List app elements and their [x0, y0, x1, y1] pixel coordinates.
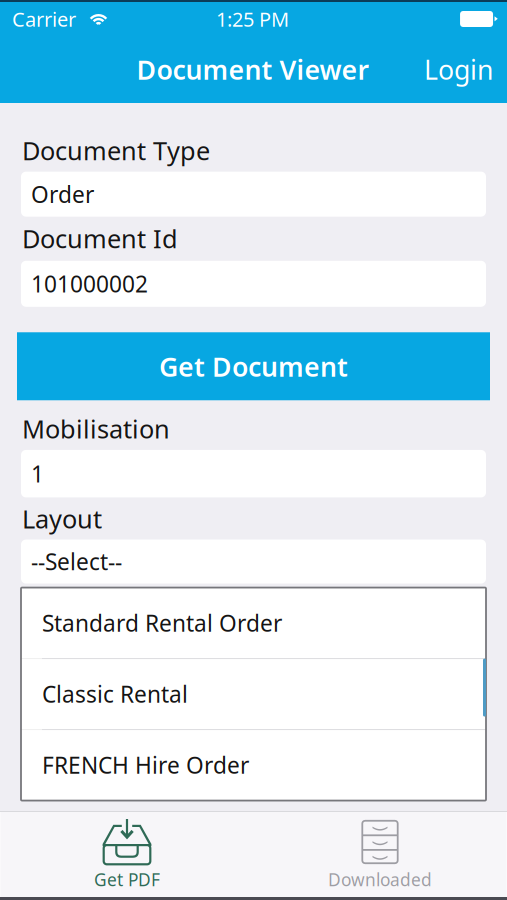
staticText: Get PDF [94, 868, 160, 891]
staticText: Carrier [12, 6, 76, 32]
button[interactable]: Get Document [0, 332, 507, 400]
staticText: Standard Rental Order [42, 608, 282, 638]
staticText: Get Document [159, 349, 348, 384]
button[interactable]: Downloaded [253, 812, 506, 897]
staticText: Downloaded [328, 868, 432, 891]
button[interactable]: FRENCH Hire Order [21, 730, 486, 800]
staticText: 101000002 [31, 269, 148, 299]
staticText: Document Type [22, 133, 210, 167]
staticText: Layout [22, 502, 102, 535]
staticText: 1:25 PM [216, 6, 289, 32]
staticText: Document Viewer [136, 52, 369, 87]
staticText: --Select-- [31, 546, 122, 577]
button[interactable]: Standard Rental Order [21, 588, 486, 658]
staticText: Order [31, 179, 94, 209]
button[interactable]: Get PDF [0, 812, 253, 897]
staticText: 1 [31, 459, 44, 489]
staticText: Mobilisation [22, 412, 170, 445]
staticText: Classic Rental [42, 679, 188, 709]
staticText: FRENCH Hire Order [42, 750, 249, 780]
staticText: Login [424, 52, 493, 87]
staticText: Document Id [22, 222, 178, 255]
button[interactable]: Classic Rental [21, 659, 486, 729]
button[interactable]: Login [411, 39, 506, 100]
